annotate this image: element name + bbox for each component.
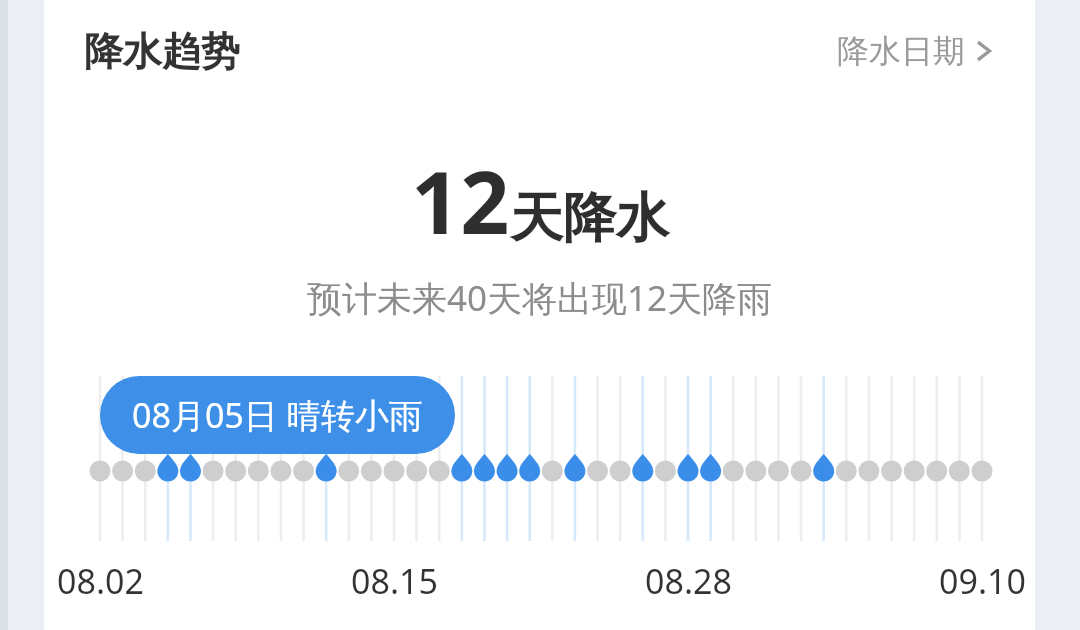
button[interactable]: 降水日期 [811, 15, 1035, 87]
staticText: 降水趋势 [84, 27, 240, 76]
staticText: 12 [411, 142, 510, 259]
button[interactable]: 08月05日 晴转小雨 [100, 376, 455, 454]
staticText: 08.02 [57, 558, 144, 604]
button[interactable]: Precipitation trend chart [44, 0, 1035, 630]
staticText: 预计未来40天将出现12天降雨 [44, 274, 1035, 322]
staticText: 08.28 [645, 558, 732, 604]
staticText: 09.10 [939, 558, 1026, 604]
staticText: 08.15 [351, 558, 438, 604]
staticText: 降水日期 [837, 31, 965, 71]
staticText: 天降水 [510, 185, 669, 252]
staticText: 08月05日 晴转小雨 [132, 392, 423, 438]
